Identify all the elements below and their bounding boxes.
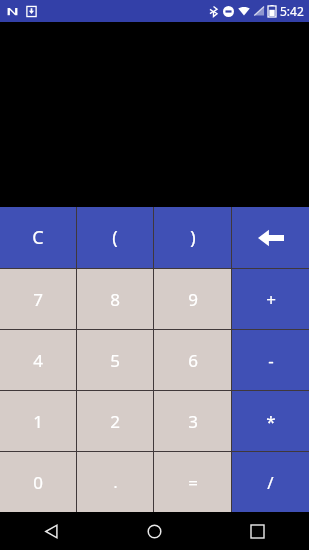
button[interactable]: )	[154, 207, 231, 268]
staticText: )	[190, 225, 196, 250]
staticText: 9	[188, 288, 198, 311]
staticText: 4	[33, 349, 43, 372]
button[interactable]: 9	[154, 269, 231, 329]
staticText: 7	[33, 288, 43, 311]
button[interactable]: 3	[154, 391, 231, 451]
button[interactable]: *	[232, 391, 309, 451]
button[interactable]: +	[232, 269, 309, 329]
button[interactable]: Recent apps	[206, 512, 309, 550]
staticText: =	[188, 471, 198, 494]
button[interactable]: (	[77, 207, 153, 268]
button[interactable]: Backspace	[232, 207, 309, 268]
staticText: 2	[110, 410, 120, 433]
button[interactable]: 8	[77, 269, 153, 329]
staticText: 5	[110, 349, 120, 372]
staticText: 6	[188, 349, 198, 372]
staticText: 5:42	[280, 3, 304, 19]
button[interactable]: 5	[77, 330, 153, 390]
staticText: -	[268, 349, 274, 372]
button[interactable]: 2	[77, 391, 153, 451]
button[interactable]: -	[232, 330, 309, 390]
button[interactable]: 0	[0, 452, 76, 512]
staticText: *	[266, 410, 276, 433]
staticText: 3	[188, 410, 198, 433]
button[interactable]: 6	[154, 330, 231, 390]
staticText: 8	[110, 288, 120, 311]
button[interactable]: 4	[0, 330, 76, 390]
staticText: (	[112, 225, 118, 250]
button[interactable]: C	[0, 207, 76, 268]
button[interactable]: Home	[103, 512, 206, 550]
staticText: +	[266, 288, 276, 311]
button[interactable]: 1	[0, 391, 76, 451]
staticText: 1	[33, 410, 43, 433]
button[interactable]: /	[232, 452, 309, 512]
button[interactable]: 7	[0, 269, 76, 329]
staticText: C	[32, 225, 44, 250]
staticText: /	[267, 471, 274, 494]
staticText: 0	[33, 471, 43, 494]
button[interactable]: Back	[0, 512, 103, 550]
staticText: .	[113, 472, 118, 492]
button[interactable]: =	[154, 452, 231, 512]
